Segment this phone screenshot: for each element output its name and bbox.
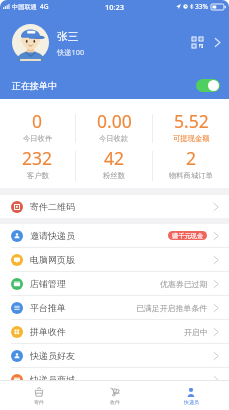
staticText: 0.00 — [97, 109, 132, 133]
staticText: 今日收款 — [99, 134, 129, 143]
button[interactable]: 寄件二维码 — [11, 195, 221, 218]
staticText: 张三 — [57, 30, 79, 43]
staticText: 电脑网页版 — [30, 254, 75, 265]
button[interactable]: 店铺管理 — [11, 272, 221, 295]
button[interactable]: 个人资料 — [211, 36, 224, 49]
button[interactable]: 快递员 — [153, 381, 229, 410]
staticText: 4G — [40, 2, 49, 11]
staticText: 2 — [186, 146, 197, 170]
staticText: 42 — [104, 146, 125, 170]
button[interactable]: 收件 — [77, 381, 153, 410]
staticText: 邀请快递员 — [30, 230, 75, 241]
staticText: 收件 — [110, 399, 120, 405]
staticText: 33% — [195, 2, 209, 11]
staticText: 5.52 — [174, 109, 209, 133]
staticText: 中国联通 — [12, 3, 37, 11]
button[interactable]: 2 — [153, 144, 229, 182]
staticText: 232 — [22, 146, 53, 170]
staticText: 开启中 — [184, 327, 208, 337]
staticText: 快递员 — [184, 399, 199, 405]
staticText: 0 — [32, 109, 43, 133]
button[interactable]: 快递员好友 — [11, 344, 221, 367]
staticText: 已满足开启推单条件 — [136, 303, 208, 313]
button[interactable]: 0.00 — [76, 107, 152, 144]
staticText: 赚千元现金 — [172, 232, 203, 240]
staticText: 可提现金额 — [173, 134, 210, 143]
button[interactable]: 张三 — [12, 13, 224, 71]
button[interactable]: 快递员商城 — [11, 368, 221, 391]
staticText: 快递员商城 — [30, 374, 75, 385]
staticText: 今日收件 — [23, 134, 53, 143]
button[interactable]: 0 — [0, 107, 75, 144]
staticText: 店铺管理 — [30, 278, 66, 289]
button[interactable]: 232 — [0, 144, 75, 182]
staticText: 客户数 — [27, 171, 49, 180]
staticText: 快递100 — [57, 47, 85, 57]
staticText: 粉丝数 — [103, 171, 125, 180]
staticText: 快递员好友 — [30, 350, 75, 361]
staticText: 寄件 — [34, 399, 44, 405]
staticText: 10:23 — [105, 2, 124, 12]
button[interactable]: 正在接单中 — [12, 71, 220, 99]
button[interactable]: 寄件 — [0, 381, 77, 410]
button[interactable]: 42 — [76, 144, 152, 182]
button[interactable]: 拼单收件 — [11, 320, 221, 343]
staticText: 拼单收件 — [30, 326, 66, 337]
staticText: 寄件二维码 — [30, 201, 75, 212]
button[interactable]: 电脑网页版 — [11, 248, 221, 271]
staticText: 优惠券已过期 — [160, 279, 208, 289]
button[interactable]: 我的二维码 — [190, 35, 205, 50]
staticText: 物料商城订单 — [169, 171, 213, 180]
staticText: 正在接单中 — [12, 80, 57, 91]
button[interactable]: 5.52 — [153, 107, 229, 144]
button[interactable]: 平台推单 — [11, 296, 221, 319]
staticText: 平台推单 — [30, 302, 66, 313]
button[interactable]: 邀请快递员 — [11, 224, 221, 247]
